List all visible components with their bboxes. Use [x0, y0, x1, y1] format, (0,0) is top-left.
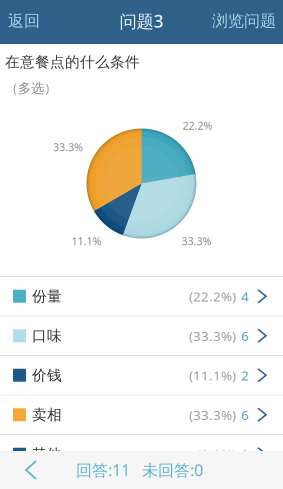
staticText: 6: [241, 327, 249, 345]
staticText: 价钱: [32, 366, 62, 384]
button[interactable]: 浏览问题: [202, 0, 283, 43]
staticText: 33.3%: [53, 140, 83, 154]
staticText: 11.1%: [71, 234, 101, 248]
button[interactable]: 返回: [0, 0, 50, 43]
staticText: 未回答:0: [142, 459, 203, 481]
button[interactable]: 口味: [0, 316, 283, 355]
staticText: 在意餐点的什么条件: [5, 53, 140, 71]
staticText: 33.3%: [181, 234, 211, 248]
staticText: 回答:11: [76, 459, 130, 481]
staticText: 4: [241, 287, 249, 305]
button[interactable]: 卖相: [0, 395, 283, 434]
staticText: (22.2%): [189, 287, 236, 305]
staticText: 浏览问题: [212, 11, 276, 31]
staticText: (11.1%): [189, 366, 236, 384]
staticText: 0: [241, 445, 249, 463]
staticText: (0.0%): [197, 445, 236, 463]
staticText: 6: [241, 406, 249, 424]
staticText: 口味: [32, 327, 62, 345]
staticText: 2: [241, 366, 249, 384]
button[interactable]: 价钱: [0, 356, 283, 394]
staticText: 22.2%: [182, 118, 212, 133]
button[interactable]: Previous question: [0, 451, 58, 489]
staticText: 份量: [32, 287, 62, 305]
staticText: 卖相: [32, 406, 62, 424]
button[interactable]: 其他: [0, 435, 283, 473]
staticText: 其他: [32, 445, 62, 463]
staticText: (33.3%): [189, 327, 236, 345]
staticText: （多选）: [5, 80, 57, 96]
button[interactable]: 份量: [0, 277, 283, 315]
staticText: 问题3: [119, 9, 163, 32]
staticText: (33.3%): [189, 406, 236, 424]
staticText: 返回: [8, 11, 40, 31]
